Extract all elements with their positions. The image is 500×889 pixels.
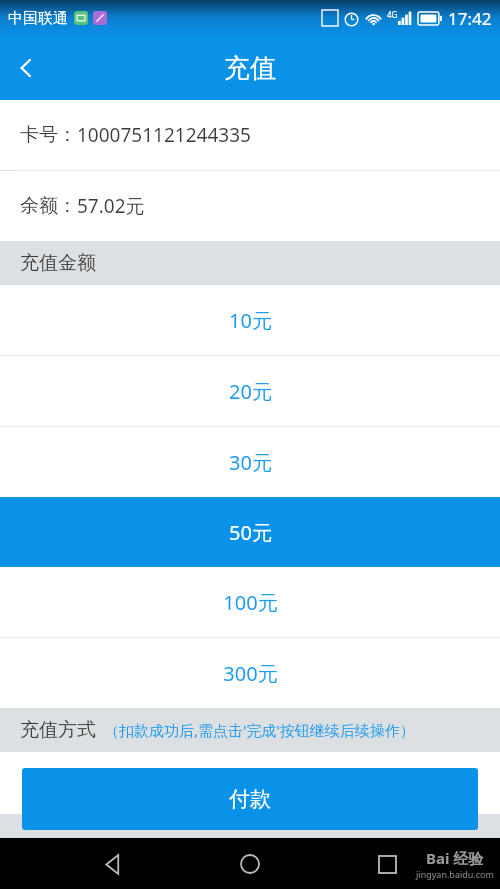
staticText: jingyan.baidu.com [416, 868, 494, 880]
button[interactable] [0, 752, 500, 814]
staticText: 充值方式 [20, 718, 96, 742]
staticText: 充值金额 [20, 251, 96, 275]
staticText: Bai 经验 [426, 848, 484, 868]
staticText: 100元 [223, 589, 278, 616]
button[interactable]: Recents [363, 840, 411, 888]
button[interactable]: 300元 [0, 638, 500, 708]
staticText: 付款 [229, 786, 271, 812]
staticText: 中国联通 [8, 9, 68, 28]
staticText: 17:42 [448, 7, 492, 30]
staticText: 20元 [229, 378, 272, 405]
staticText: 余额： [20, 194, 77, 218]
button[interactable]: 20元 [0, 356, 500, 426]
staticText: 57.02元 [77, 193, 145, 219]
button[interactable]: Home [226, 840, 274, 888]
button[interactable]: 余额： [0, 171, 500, 241]
staticText: 10元 [229, 307, 272, 334]
button[interactable]: 100元 [0, 567, 500, 637]
button[interactable]: 10元 [0, 285, 500, 355]
button[interactable]: 30元 [0, 427, 500, 497]
staticText: 1000751121244335 [77, 122, 251, 148]
button[interactable]: 卡号： [0, 100, 500, 170]
staticText: （扣款成功后,需点击'完成'按钮继续后续操作） [104, 720, 415, 740]
staticText: 50元 [229, 519, 272, 546]
button[interactable]: 50元 [0, 497, 500, 567]
button[interactable]: Back [89, 840, 137, 888]
staticText: 30元 [229, 449, 272, 476]
staticText: 卡号： [20, 123, 77, 147]
staticText: 4G [387, 9, 398, 20]
button[interactable]: 付款 [22, 768, 478, 830]
staticText: 300元 [223, 660, 278, 687]
staticText: 充值 [224, 52, 276, 85]
button[interactable]: 返回 [0, 42, 52, 94]
